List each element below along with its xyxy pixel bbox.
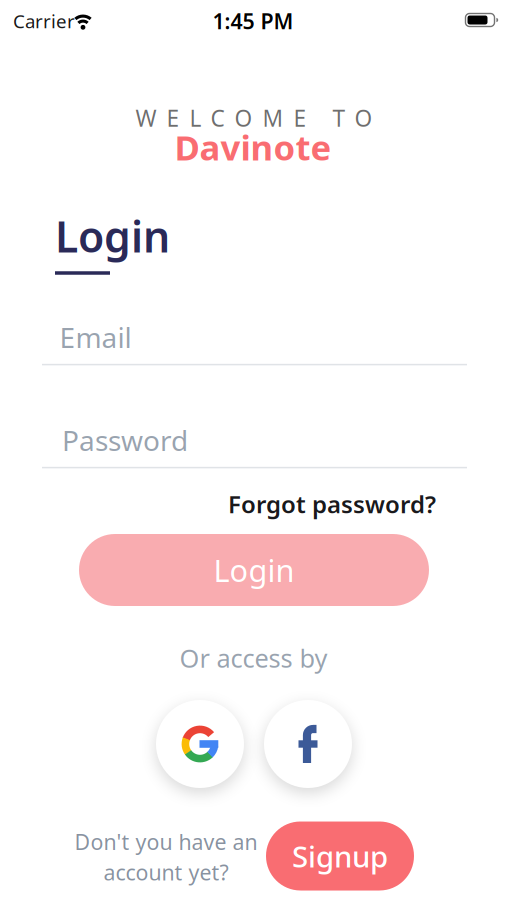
button[interactable]: Login: [79, 534, 429, 606]
staticText: Password: [62, 422, 188, 459]
staticText: Carrier: [13, 9, 75, 33]
staticText: 1:45 PM: [212, 7, 293, 35]
button[interactable]: Sign in with Google: [156, 700, 244, 788]
staticText: Login: [55, 208, 170, 264]
staticText: WELCOME TO: [135, 103, 372, 133]
staticText: account yet?: [103, 858, 228, 886]
staticText: Login: [213, 550, 294, 590]
button[interactable]: Email: [42, 323, 467, 361]
button[interactable]: Signup: [266, 821, 414, 890]
staticText: Forgot password?: [228, 488, 436, 520]
staticText: Davinote: [174, 124, 331, 170]
button[interactable]: Forgot password?: [228, 488, 436, 520]
staticText: Don't you have an: [74, 828, 257, 856]
button[interactable]: Password: [42, 426, 467, 464]
staticText: Email: [59, 319, 131, 356]
staticText: Signup: [292, 836, 388, 875]
button[interactable]: Sign in with Facebook: [264, 700, 352, 788]
staticText: Or access by: [179, 641, 327, 675]
